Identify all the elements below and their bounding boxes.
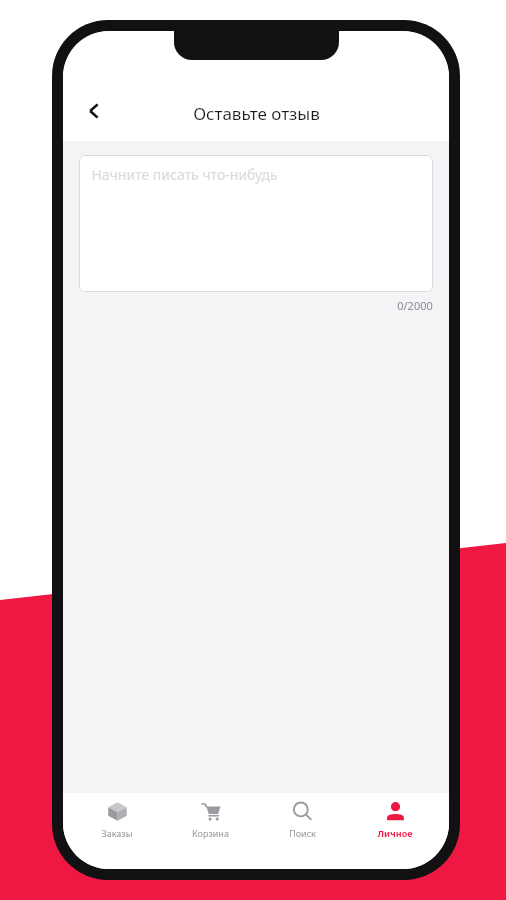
staticText: Личное	[377, 827, 413, 839]
button[interactable]: Поиск	[264, 793, 340, 839]
staticText: Начните писать что-нибудь	[91, 165, 278, 184]
button[interactable]: Начните писать что-нибудь	[79, 155, 433, 292]
staticText: Оставьте отзыв	[193, 102, 320, 125]
staticText: Заказы	[101, 827, 133, 839]
staticText: Поиск	[289, 827, 316, 839]
staticText: Корзина	[192, 827, 229, 839]
button[interactable]: Корзина	[172, 793, 248, 839]
button[interactable]: Back	[71, 87, 119, 135]
button[interactable]: Личное	[357, 793, 433, 839]
button[interactable]: Заказы	[79, 793, 155, 839]
staticText: 0/2000	[397, 298, 433, 313]
